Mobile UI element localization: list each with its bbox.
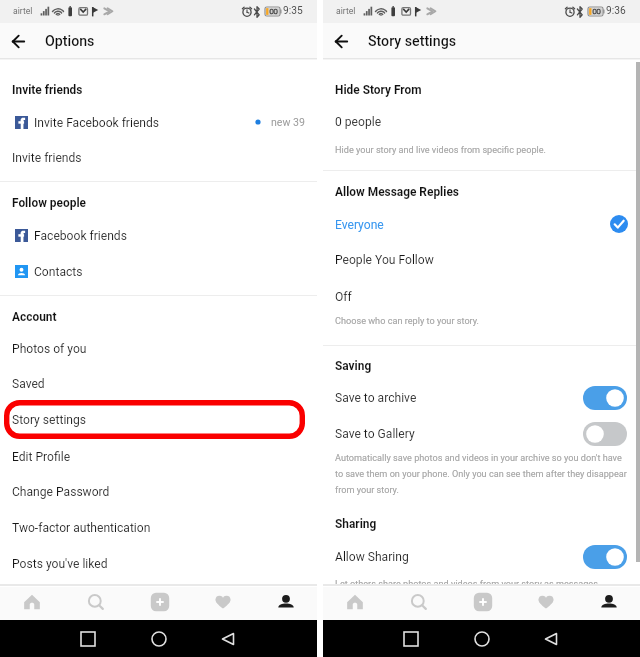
staticText: Allow Sharing: [335, 550, 409, 564]
button[interactable]: Back: [6, 27, 34, 55]
button[interactable]: Activity: [514, 584, 577, 620]
button[interactable]: Everyone: [323, 208, 640, 240]
staticText: Edit Profile: [12, 450, 71, 464]
staticText: Automatically save photos and videos in …: [335, 453, 622, 464]
staticText: People You Follow: [335, 253, 434, 267]
button[interactable]: Edit Profile: [0, 440, 317, 474]
button[interactable]: Recent apps: [397, 625, 425, 653]
button[interactable]: Contacts: [0, 255, 317, 287]
button[interactable]: Allow Sharing: [323, 540, 640, 574]
button[interactable]: People You Follow: [323, 243, 640, 277]
staticText: Off: [335, 290, 352, 304]
staticText: airtel: [13, 6, 33, 16]
staticText: Let others share photos and videos from …: [335, 579, 598, 590]
staticText: Saving: [335, 359, 372, 373]
button[interactable]: Profile: [254, 584, 317, 620]
button[interactable]: Save to Gallery: [323, 417, 640, 451]
staticText: Hide your story and live videos from spe…: [335, 145, 547, 156]
button[interactable]: Facebook friends: [0, 219, 317, 251]
staticText: Story settings: [368, 33, 456, 50]
button[interactable]: Posts you've liked: [0, 547, 317, 581]
staticText: 9:35: [283, 5, 303, 17]
button[interactable]: Search: [387, 584, 451, 620]
button[interactable]: Recent apps: [74, 625, 102, 653]
button[interactable]: Home: [0, 584, 64, 620]
staticText: Account: [12, 310, 57, 324]
staticText: from your story.: [335, 485, 399, 496]
staticText: Choose who can reply to your story.: [335, 316, 480, 327]
button[interactable]: Invite Facebook friends: [0, 106, 317, 138]
staticText: 9:36: [606, 5, 626, 17]
staticText: Invite Facebook friends: [34, 116, 160, 130]
staticText: 0 people: [335, 115, 382, 129]
button[interactable]: Two-factor authentication: [0, 511, 317, 545]
staticText: Two-factor authentication: [12, 521, 151, 535]
button[interactable]: Back: [329, 27, 357, 55]
staticText: Photos of you: [12, 342, 87, 356]
button[interactable]: 0 people: [323, 105, 640, 139]
button[interactable]: Home: [145, 625, 173, 653]
staticText: Contacts: [34, 265, 83, 279]
staticText: Story settings: [12, 413, 87, 427]
button[interactable]: Activity: [191, 584, 254, 620]
button[interactable]: Back: [214, 625, 242, 653]
staticText: Save to archive: [335, 391, 417, 405]
staticText: new 39: [271, 116, 305, 128]
staticText: Invite friends: [12, 151, 82, 165]
staticText: Posts you've liked: [12, 557, 108, 571]
staticText: to save them on your phone. Only you can…: [335, 469, 627, 480]
staticText: Allow Message Replies: [335, 185, 459, 199]
button[interactable]: Back: [537, 625, 565, 653]
button[interactable]: Saved: [0, 367, 317, 401]
button[interactable]: Photos of you: [0, 332, 317, 366]
staticText: Invite friends: [12, 83, 83, 97]
staticText: airtel: [336, 6, 356, 16]
button[interactable]: New post: [128, 584, 191, 620]
staticText: Options: [45, 33, 95, 50]
staticText: Save to Gallery: [335, 427, 415, 441]
staticText: Facebook friends: [34, 229, 127, 243]
staticText: Saved: [12, 377, 45, 391]
staticText: Change Password: [12, 485, 110, 499]
button[interactable]: New post: [451, 584, 514, 620]
staticText: Everyone: [335, 218, 384, 232]
button[interactable]: Home: [323, 584, 387, 620]
staticText: Hide Story From: [335, 83, 422, 97]
button[interactable]: Profile: [577, 584, 640, 620]
button[interactable]: Story settings: [0, 403, 317, 437]
button[interactable]: Search: [64, 584, 128, 620]
button[interactable]: Invite friends: [0, 141, 317, 175]
staticText: Sharing: [335, 517, 377, 531]
button[interactable]: Home: [468, 625, 496, 653]
staticText: Follow people: [12, 196, 86, 210]
button[interactable]: Change Password: [0, 475, 317, 509]
button[interactable]: Save to archive: [323, 381, 640, 415]
button[interactable]: Off: [323, 280, 640, 314]
